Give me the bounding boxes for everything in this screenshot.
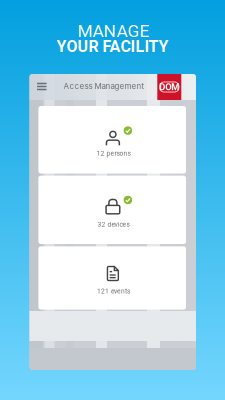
staticText: DOM bbox=[159, 81, 179, 92]
staticText: 121 events bbox=[97, 287, 130, 295]
button[interactable]: 12 persons bbox=[38, 106, 186, 174]
button[interactable]: Menu bbox=[31, 74, 53, 98]
staticText: MANAGE bbox=[77, 21, 149, 41]
staticText: Access Management bbox=[64, 81, 145, 91]
button[interactable]: DOM bbox=[157, 74, 181, 100]
staticText: YOUR FACILITY bbox=[56, 37, 168, 56]
button[interactable]: 32 devices bbox=[38, 176, 186, 244]
staticText: 32 devices bbox=[97, 220, 129, 228]
button[interactable]: 121 events bbox=[38, 246, 186, 310]
staticText: 12 persons bbox=[96, 150, 130, 157]
